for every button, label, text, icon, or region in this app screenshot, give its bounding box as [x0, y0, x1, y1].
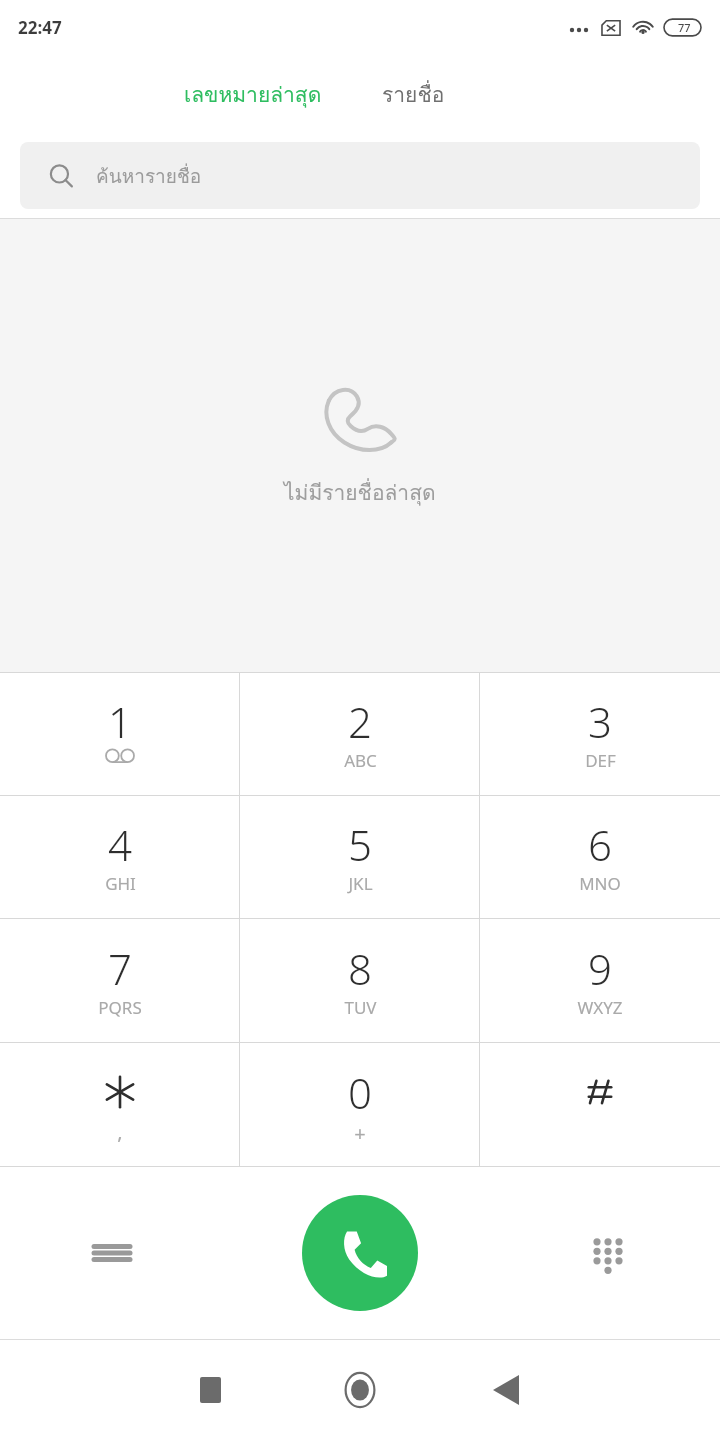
staticText: DEF — [585, 749, 616, 772]
button[interactable]: 0 — [240, 1043, 480, 1166]
staticText: ค้นหารายชื่อ — [96, 161, 202, 191]
button[interactable]: เลขหมายล่าสุด — [176, 72, 330, 117]
staticText: รายชื่อ — [382, 78, 445, 111]
staticText: 1 — [108, 693, 132, 749]
button[interactable]: 1 — [0, 673, 240, 795]
button[interactable]: 5 — [240, 796, 480, 918]
button[interactable]: 4 — [0, 796, 240, 918]
staticText: 22:47 — [18, 16, 62, 39]
staticText: 3 — [588, 693, 612, 749]
staticText: 2 — [348, 693, 372, 749]
staticText: ABC — [344, 749, 377, 772]
button[interactable]: 9 — [480, 919, 720, 1042]
staticText: GHI — [105, 872, 136, 895]
button[interactable] — [480, 1043, 720, 1166]
staticText: 4 — [108, 816, 132, 872]
staticText: JKL — [348, 872, 373, 895]
staticText: 9 — [588, 940, 612, 996]
button[interactable]: Home — [322, 1352, 398, 1428]
button[interactable]: Recents — [172, 1352, 248, 1428]
staticText: 0 — [348, 1064, 372, 1120]
staticText: PQRS — [98, 996, 142, 1019]
button[interactable]: รายชื่อ — [374, 72, 453, 117]
staticText: , — [117, 1118, 123, 1144]
staticText: เลขหมายล่าสุด — [184, 78, 322, 111]
button[interactable]: Dialpad — [574, 1219, 642, 1287]
button[interactable]: 6 — [480, 796, 720, 918]
staticText: MNO — [579, 872, 621, 895]
button[interactable]: Call — [302, 1195, 418, 1311]
button[interactable]: 2 — [240, 673, 480, 795]
staticText: TUV — [344, 996, 377, 1019]
staticText: + — [354, 1120, 366, 1146]
button[interactable]: 8 — [240, 919, 480, 1042]
staticText: 77 — [678, 20, 691, 35]
button[interactable]: Menu — [78, 1219, 146, 1287]
button[interactable]: Back — [468, 1352, 544, 1428]
staticText: 6 — [588, 816, 612, 872]
button[interactable]: ค้นหารายชื่อ — [20, 142, 700, 209]
staticText: 5 — [348, 816, 372, 872]
button[interactable]: 3 — [480, 673, 720, 795]
staticText: 7 — [108, 940, 132, 996]
staticText: ไม่มีรายชื่อล่าสุด — [284, 476, 436, 509]
button[interactable]: , — [0, 1043, 240, 1166]
staticText: WXYZ — [577, 996, 623, 1019]
button[interactable]: 7 — [0, 919, 240, 1042]
staticText: 8 — [348, 940, 372, 996]
